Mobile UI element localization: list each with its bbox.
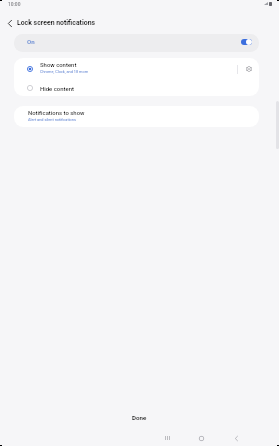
button[interactable]: Back — [2, 15, 18, 31]
staticText: 10:00 — [8, 1, 21, 7]
staticText: Show content — [40, 61, 77, 68]
button[interactable]: Back — [222, 427, 250, 446]
button[interactable]: On — [14, 34, 259, 52]
staticText: Alert and silent notifications — [28, 117, 76, 122]
button[interactable]: Hide content — [14, 80, 259, 96]
staticText: Done — [132, 414, 147, 421]
button[interactable]: Done — [108, 410, 171, 425]
button[interactable]: Home — [187, 427, 215, 446]
button[interactable]: Notifications to show — [14, 106, 259, 127]
staticText: On — [27, 38, 35, 45]
staticText: Lock screen notifications — [17, 19, 96, 27]
staticText: Hide content — [40, 85, 74, 92]
button[interactable]: Recents — [153, 427, 181, 446]
staticText: Notifications to show — [28, 109, 85, 116]
staticText: Chrome, Clock, and 18 more — [40, 69, 88, 74]
button[interactable]: Settings — [238, 58, 259, 80]
button[interactable]: Show content — [14, 58, 259, 80]
